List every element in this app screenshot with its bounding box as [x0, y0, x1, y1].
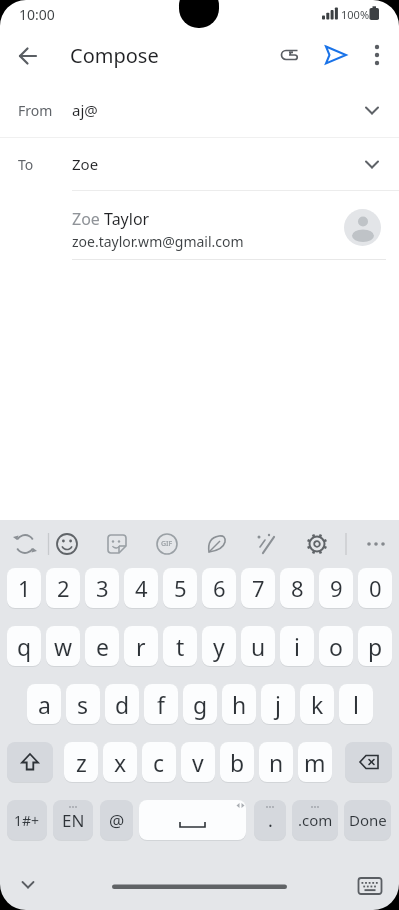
button[interactable]	[0, 138, 399, 190]
button[interactable]: c	[142, 742, 176, 782]
button[interactable]	[245, 521, 289, 567]
button[interactable]: z	[64, 742, 98, 782]
button[interactable]	[3, 521, 47, 567]
button[interactable]: k	[300, 684, 334, 724]
button[interactable]: 1#+	[7, 800, 47, 840]
staticText: p	[368, 631, 383, 662]
button[interactable]: w	[46, 626, 80, 666]
button[interactable]: 6	[202, 568, 236, 608]
button[interactable]: p	[358, 626, 392, 666]
button[interactable]: EN	[53, 800, 93, 840]
button[interactable]: q	[7, 626, 41, 666]
button[interactable]	[0, 84, 399, 137]
staticText: j	[275, 689, 281, 720]
staticText: w	[54, 631, 73, 662]
button[interactable]: b	[220, 742, 254, 782]
staticText: m	[304, 747, 326, 778]
button[interactable]	[8, 36, 48, 76]
staticText: 9	[330, 573, 343, 603]
button[interactable]	[0, 196, 399, 258]
staticText: @	[109, 809, 125, 832]
staticText: e	[96, 631, 109, 662]
staticText: 8	[291, 573, 304, 603]
button[interactable]: l	[339, 684, 373, 724]
button[interactable]: y	[202, 626, 236, 666]
staticText: b	[230, 747, 245, 778]
button[interactable]: r	[124, 626, 158, 666]
button[interactable]: .	[254, 800, 286, 840]
staticText: 7	[252, 573, 265, 603]
staticText: Compose	[70, 42, 159, 69]
button[interactable]: Done	[344, 800, 391, 840]
staticText: GIF	[161, 539, 173, 549]
button[interactable]	[352, 868, 388, 904]
button[interactable]: 5	[163, 568, 197, 608]
button[interactable]	[10, 867, 46, 903]
button[interactable]	[269, 35, 309, 75]
staticText: 4	[135, 573, 148, 603]
button[interactable]	[345, 742, 392, 782]
button[interactable]: e	[85, 626, 119, 666]
button[interactable]: v	[181, 742, 215, 782]
button[interactable]: u	[241, 626, 275, 666]
staticText: 0	[369, 573, 382, 603]
button[interactable]: n	[259, 742, 293, 782]
staticText: z	[76, 747, 87, 778]
staticText: o	[329, 631, 343, 662]
staticText: .	[268, 808, 273, 833]
button[interactable]	[354, 521, 398, 567]
button[interactable]: i	[280, 626, 314, 666]
button[interactable]	[7, 742, 53, 782]
staticText: x	[114, 747, 127, 778]
button[interactable]: o	[319, 626, 353, 666]
button[interactable]: 3	[85, 568, 119, 608]
staticText: c	[153, 747, 165, 778]
button[interactable]: 4	[124, 568, 158, 608]
button[interactable]: .com	[292, 800, 338, 840]
button[interactable]: g	[183, 684, 217, 724]
staticText: y	[213, 631, 225, 662]
staticText: 100%	[341, 7, 370, 22]
staticText: .com	[298, 810, 333, 830]
staticText: q	[17, 631, 32, 662]
staticText: 10:00	[19, 5, 55, 24]
button[interactable]: @	[100, 800, 133, 840]
staticText: l	[353, 689, 359, 720]
button[interactable]	[45, 521, 89, 567]
button[interactable]: 9	[319, 568, 353, 608]
button[interactable]	[139, 800, 246, 840]
button[interactable]: 7	[241, 568, 275, 608]
staticText: a	[38, 689, 51, 720]
staticText: h	[232, 689, 247, 720]
staticText: 1#+	[14, 811, 40, 830]
button[interactable]: 0	[358, 568, 392, 608]
staticText: s	[77, 689, 89, 720]
staticText: To	[18, 155, 34, 174]
button[interactable]	[357, 35, 397, 75]
button[interactable]: h	[222, 684, 256, 724]
button[interactable]: x	[103, 742, 137, 782]
button[interactable]	[195, 521, 239, 567]
button[interactable]	[145, 521, 189, 567]
button[interactable]: m	[298, 742, 332, 782]
button[interactable]: 8	[280, 568, 314, 608]
staticText: aj@	[72, 100, 98, 120]
staticText: i	[294, 631, 300, 662]
button[interactable]: j	[261, 684, 295, 724]
staticText: Zoe Taylor	[72, 208, 150, 230]
button[interactable]	[95, 521, 139, 567]
button[interactable]	[295, 521, 339, 567]
button[interactable]: a	[27, 684, 61, 724]
button[interactable]: f	[144, 684, 178, 724]
staticText: Zoe	[72, 154, 99, 174]
staticText: r	[136, 631, 146, 662]
button[interactable]: t	[163, 626, 197, 666]
staticText: From	[18, 101, 53, 120]
staticText: u	[251, 631, 266, 662]
button[interactable]: 1	[7, 568, 41, 608]
button[interactable]: d	[105, 684, 139, 724]
staticText: zoe.taylor.wm@gmail.com	[72, 232, 244, 251]
button[interactable]: 2	[46, 568, 80, 608]
button[interactable]	[316, 35, 356, 75]
button[interactable]: s	[66, 684, 100, 724]
